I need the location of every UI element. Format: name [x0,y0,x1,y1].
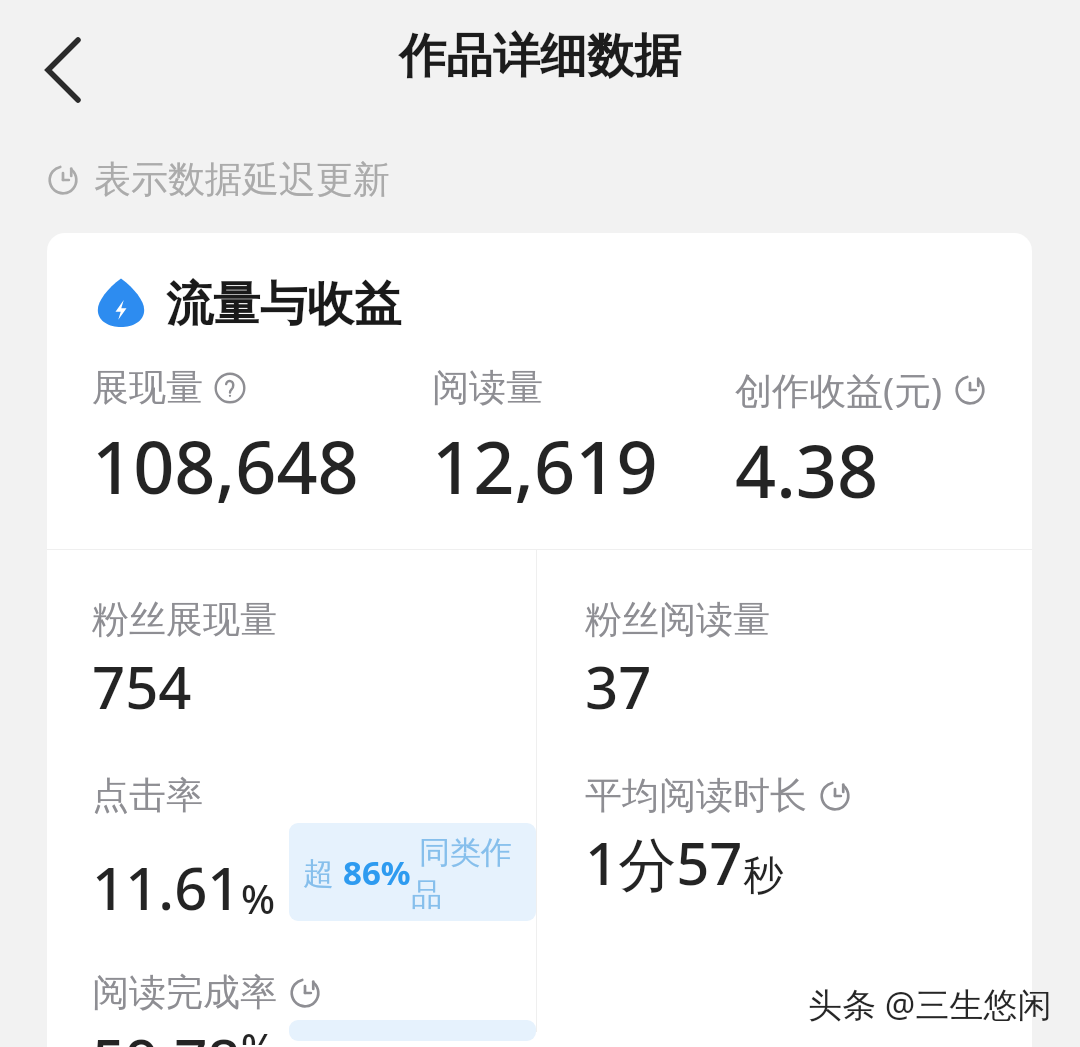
button[interactable]: 流量与收益 [92,275,401,334]
staticText: 超 [303,851,343,893]
staticText: 点击率 [92,772,203,819]
button[interactable]: 粉丝阅读量 [585,596,1032,726]
staticText: 37 [585,647,652,726]
staticText: 108,648 [92,417,359,515]
staticText: 粉丝阅读量 [585,596,770,643]
button[interactable]: Back [16,18,112,122]
staticText: 阅读完成率 [92,969,277,1016]
staticText: 粉丝展现量 [92,596,277,643]
staticText: 头条 @三生悠闲 [808,981,1052,1027]
staticText: 同类作品 [411,830,522,914]
button[interactable]: 创作收益(元) [735,364,1025,519]
staticText: 秒 [743,850,783,900]
staticText: 平均阅读时长 [585,772,807,819]
staticText: 4.38 [735,421,879,519]
staticText: 流量与收益 [166,275,401,334]
button[interactable]: 粉丝展现量 [92,596,536,726]
staticText: 12,619 [432,417,658,515]
button[interactable]: 平均阅读时长 [585,772,1032,902]
staticText: 阅读量 [432,364,543,411]
staticText: 59.78 [92,1020,241,1047]
button[interactable]: 阅读量 [432,364,735,515]
staticText: 创作收益(元) [735,364,943,415]
staticText: 1分57 [585,823,743,902]
staticText: 作品详细数据 [0,27,1080,86]
staticText: 754 [92,647,192,726]
staticText: 表示数据延迟更新 [94,156,390,203]
staticText: 展现量 [92,364,203,411]
staticText: 11.61 [92,848,241,927]
staticText: % [241,871,276,925]
button[interactable]: 阅读完成率 [92,969,536,1047]
staticText: % [241,1020,276,1045]
button[interactable]: 点击率 [92,772,536,927]
staticText: 86% [343,850,411,895]
button[interactable]: 展现量 [92,364,432,515]
